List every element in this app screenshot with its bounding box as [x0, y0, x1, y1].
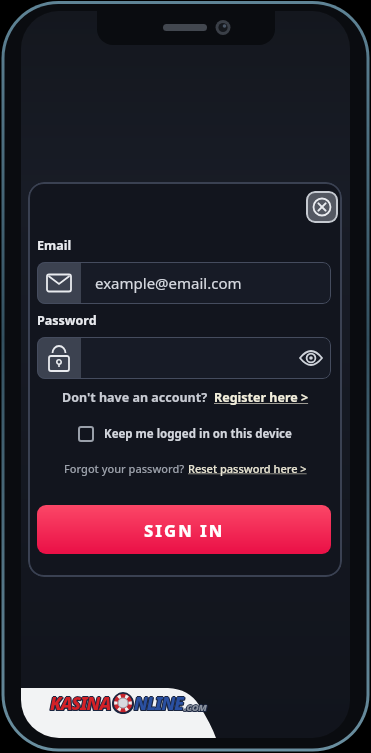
- staticText: .COM: [185, 702, 208, 715]
- staticText: example@email.com: [95, 273, 242, 293]
- button[interactable]: SIGN IN: [37, 505, 331, 554]
- button[interactable]: example@email.com: [37, 262, 331, 304]
- staticText: NLINE: [134, 691, 184, 715]
- staticText: Reset password here >: [188, 461, 307, 476]
- button[interactable]: [306, 191, 338, 223]
- staticText: KASINA: [49, 692, 110, 716]
- staticText: Email: [37, 237, 72, 254]
- staticText: KASINA: [50, 691, 111, 715]
- staticText: Keep me logged in on this device: [104, 426, 292, 442]
- staticText: .COM: [184, 701, 207, 714]
- button[interactable]: Don't have an account?: [28, 389, 342, 406]
- staticText: Register here >: [214, 389, 309, 406]
- staticText: .COM: [184, 700, 207, 713]
- button[interactable]: KASINA: [50, 691, 207, 715]
- staticText: NLINE: [135, 692, 185, 716]
- staticText: Password: [37, 312, 97, 329]
- staticText: .COM: [183, 701, 206, 714]
- button[interactable]: [37, 337, 331, 379]
- button[interactable]: Forgot your password?: [28, 461, 342, 476]
- staticText: KASINA: [50, 692, 111, 716]
- staticText: Don't have an account?: [62, 389, 214, 406]
- staticText: SIGN IN: [144, 519, 225, 541]
- staticText: NLINE: [134, 690, 184, 714]
- staticText: KASINA: [50, 690, 111, 714]
- staticText: KASINA: [51, 692, 112, 716]
- staticText: NLINE: [133, 691, 183, 715]
- staticText: NLINE: [134, 692, 184, 716]
- staticText: .COM: [183, 702, 206, 715]
- staticText: KASINA: [51, 691, 112, 715]
- button[interactable]: Keep me logged in on this device: [28, 426, 342, 442]
- staticText: .COM: [185, 701, 208, 714]
- button[interactable]: [287, 337, 331, 379]
- staticText: NLINE: [133, 692, 183, 716]
- staticText: Forgot your password?: [64, 461, 188, 476]
- staticText: .COM: [184, 702, 207, 715]
- staticText: NLINE: [135, 691, 185, 715]
- staticText: KASINA: [49, 691, 110, 715]
